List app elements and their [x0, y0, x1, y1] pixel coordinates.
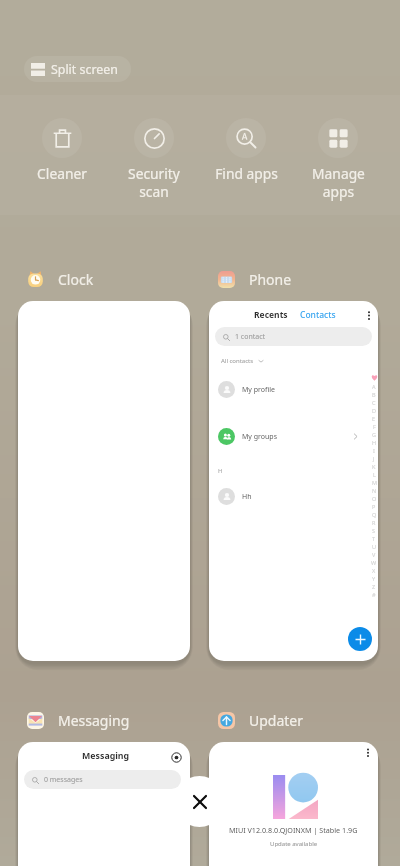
- button[interactable]: [18, 301, 190, 661]
- staticText: P: [372, 503, 376, 510]
- button[interactable]: More options: [364, 310, 374, 320]
- staticText: H: [218, 467, 223, 475]
- staticText: MIUI V12.0.8.0.QJOINXM | Stable 1.9G: [229, 825, 358, 835]
- staticText: Clock: [58, 270, 94, 289]
- button[interactable]: Messaging: [18, 742, 190, 866]
- button[interactable]: Messaging: [27, 709, 130, 731]
- staticText: X: [372, 567, 376, 574]
- button[interactable]: Split screen: [24, 56, 131, 82]
- button[interactable]: My profile: [218, 381, 370, 398]
- staticText: J: [373, 455, 375, 462]
- staticText: My groups: [242, 432, 278, 442]
- button[interactable]: Find apps: [200, 118, 292, 183]
- staticText: R: [372, 519, 376, 526]
- button[interactable]: 0 messages: [24, 770, 181, 789]
- staticText: Messaging: [82, 750, 130, 762]
- button[interactable]: Settings: [171, 752, 182, 763]
- staticText: D: [372, 407, 377, 414]
- staticText: G: [372, 431, 377, 438]
- staticText: M: [372, 479, 377, 486]
- button[interactable]: My groups: [218, 428, 370, 445]
- staticText: W: [371, 559, 377, 566]
- button[interactable]: Security scan: [108, 118, 200, 201]
- staticText: Update available: [270, 840, 318, 848]
- staticText: S: [372, 527, 376, 534]
- staticText: F: [373, 423, 376, 430]
- staticText: B: [372, 391, 376, 398]
- staticText: Messaging: [58, 711, 130, 730]
- staticText: 1 contact: [235, 332, 266, 342]
- staticText: O: [372, 495, 377, 502]
- staticText: Q: [372, 511, 377, 518]
- button[interactable]: More options: [363, 747, 373, 757]
- staticText: Split screen: [51, 61, 118, 78]
- button[interactable]: Hh: [218, 488, 370, 505]
- button[interactable]: Manage apps: [292, 118, 384, 201]
- staticText: A: [372, 383, 376, 390]
- staticText: U: [372, 543, 377, 550]
- button[interactable]: Add contact: [348, 627, 372, 651]
- button[interactable]: Clear all: [174, 776, 225, 827]
- button[interactable]: 1 contact: [215, 327, 372, 346]
- staticText: N: [372, 487, 377, 494]
- staticText: #: [372, 591, 376, 598]
- staticText: Security scan: [128, 164, 180, 201]
- staticText: All contacts: [221, 357, 254, 365]
- staticText: Hh: [242, 492, 252, 502]
- button[interactable]: Updater: [218, 709, 304, 731]
- staticText: I: [373, 447, 375, 454]
- staticText: Manage apps: [312, 164, 365, 201]
- staticText: Updater: [249, 711, 304, 730]
- staticText: C: [372, 399, 376, 406]
- staticText: K: [372, 463, 376, 470]
- staticText: Y: [372, 575, 376, 582]
- staticText: T: [372, 535, 376, 542]
- staticText: Recents: [254, 309, 288, 321]
- staticText: E: [372, 415, 376, 422]
- staticText: 0 messages: [44, 775, 83, 785]
- staticText: V: [372, 551, 376, 558]
- button[interactable]: Clock: [27, 268, 94, 290]
- staticText: Find apps: [215, 164, 278, 183]
- staticText: Contacts: [300, 309, 336, 321]
- staticText: Z: [372, 583, 376, 590]
- staticText: Cleaner: [37, 164, 87, 183]
- staticText: My profile: [242, 385, 275, 395]
- button[interactable]: Recents: [209, 301, 378, 661]
- button[interactable]: More options: [209, 742, 378, 866]
- button[interactable]: Cleaner: [16, 118, 108, 183]
- staticText: Phone: [249, 270, 292, 289]
- button[interactable]: Phone: [218, 268, 292, 290]
- staticText: L: [373, 471, 376, 478]
- staticText: H: [372, 439, 377, 446]
